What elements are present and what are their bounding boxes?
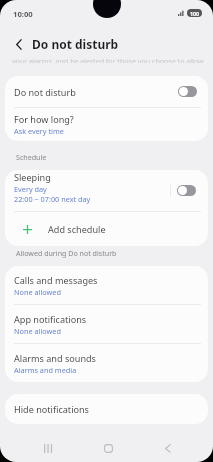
staticText: 10:00 xyxy=(13,9,33,19)
staticText: Do not disturb xyxy=(32,36,119,52)
button[interactable]: Alarms and sounds xyxy=(5,344,208,382)
staticText: your alarms, and be alerted for those yo… xyxy=(12,57,206,63)
staticText: Allowed during Do not disturb xyxy=(16,248,117,258)
staticText: None allowed xyxy=(14,287,61,297)
staticText: None allowed xyxy=(14,326,61,336)
staticText: 100 xyxy=(190,10,200,17)
staticText: 22:00 ~ 07:00 next day xyxy=(14,194,91,204)
staticText: App notifications xyxy=(14,313,87,325)
button[interactable]: Back xyxy=(149,429,187,462)
staticText: Schedule xyxy=(16,152,47,162)
button[interactable]: Toggle xyxy=(177,185,196,196)
staticText: Do not disturb xyxy=(14,86,76,98)
staticText: For how long? xyxy=(14,113,74,125)
staticText: Alarms and sounds xyxy=(14,352,96,364)
button[interactable]: Hide notifications xyxy=(5,394,208,424)
button[interactable]: Recent apps xyxy=(29,429,67,462)
button[interactable]: App notifications xyxy=(5,305,208,343)
staticText: Sleeping xyxy=(14,171,51,183)
staticText: Calls and messages xyxy=(14,274,98,286)
staticText: Every day xyxy=(14,184,47,194)
button[interactable]: For how long? xyxy=(5,108,208,141)
staticText: Add schedule xyxy=(48,223,106,235)
staticText: Hide notifications xyxy=(14,403,89,415)
button[interactable]: Calls and messages xyxy=(5,266,208,304)
button[interactable]: Toggle xyxy=(178,86,197,97)
button[interactable]: Add schedule xyxy=(5,212,208,246)
button[interactable]: Sleeping xyxy=(5,170,170,211)
staticText: Alarms and media xyxy=(14,365,77,375)
staticText: Ask every time xyxy=(14,126,64,136)
button[interactable]: Navigate up xyxy=(5,31,33,57)
button[interactable]: Toggle xyxy=(171,170,208,211)
button[interactable]: Home xyxy=(89,429,127,462)
button[interactable]: Do not disturb xyxy=(5,76,208,107)
